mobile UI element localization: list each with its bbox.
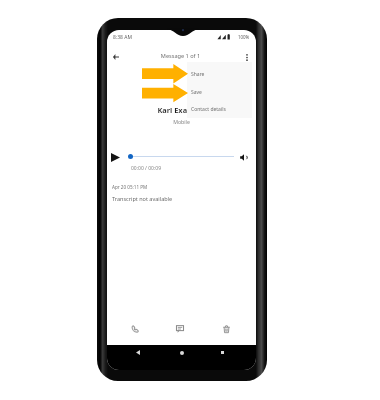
staticText: Karl Example [107, 105, 256, 115]
staticText: 8:38 AM [113, 34, 132, 41]
staticText: 00:00 / 00:09 [131, 165, 162, 172]
button[interactable]: Recent apps [216, 346, 229, 359]
button[interactable]: Volume [237, 150, 251, 164]
button[interactable]: Send message [171, 320, 189, 338]
button[interactable]: Back [109, 50, 123, 64]
button[interactable]: Contact details [187, 103, 252, 116]
button[interactable]: Delete [217, 320, 235, 338]
staticText: Apr 20 05:11 PM [112, 184, 148, 190]
staticText: Mobile [107, 118, 256, 125]
button[interactable]: Call back [126, 320, 144, 338]
staticText: Save [191, 89, 202, 96]
button[interactable]: Play [108, 150, 122, 164]
button[interactable]: Share [187, 68, 252, 81]
staticText: Transcript not available [112, 195, 173, 202]
staticText: Contact details [191, 106, 226, 113]
button[interactable]: Home [175, 346, 188, 359]
staticText: 100% [238, 34, 250, 40]
staticText: Message 1 of 1 [107, 52, 255, 60]
staticText: Share [191, 71, 205, 78]
button[interactable]: Navigate back [131, 346, 144, 359]
button[interactable]: More options [240, 50, 254, 64]
button[interactable]: Save [187, 86, 252, 99]
